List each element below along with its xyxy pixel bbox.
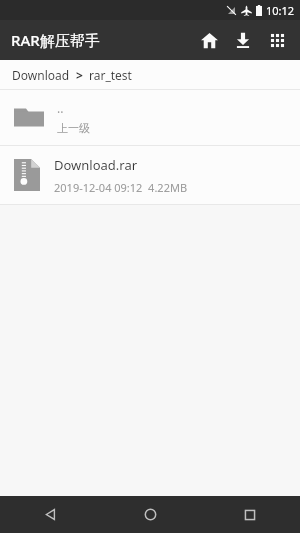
staticText: RAR解压帮手 (11, 30, 100, 50)
button[interactable]: .. (0, 90, 300, 145)
button[interactable]: Back (0, 496, 100, 533)
staticText: .. (57, 100, 64, 116)
staticText: 上一级 (57, 121, 90, 135)
staticText: Download.rar (54, 156, 138, 174)
staticText: Download (12, 67, 70, 83)
button[interactable]: Downloads (226, 23, 260, 57)
button[interactable]: Home (192, 23, 226, 57)
staticText: rar_test (89, 67, 132, 83)
button[interactable]: Home (100, 496, 200, 533)
button[interactable]: Download.rar (0, 146, 300, 204)
staticText: > (76, 67, 83, 83)
button[interactable]: Recents (200, 496, 300, 533)
button[interactable]: Apps (260, 23, 294, 57)
button[interactable]: Download (0, 60, 300, 89)
staticText: 2019-12-04 09:12 4.22MB (54, 180, 188, 195)
staticText: 10:12 (266, 3, 295, 18)
